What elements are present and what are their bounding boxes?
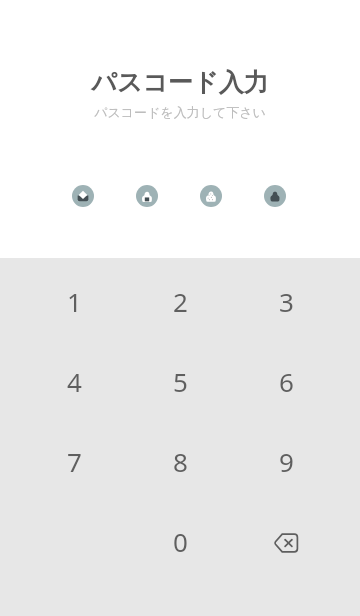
staticText: 8 (173, 444, 188, 479)
staticText: 9 (279, 444, 294, 479)
staticText: 0 (173, 524, 188, 559)
other: Passcode digit 3 (200, 185, 222, 207)
button[interactable]: 2 (127, 261, 233, 341)
other: Passcode digit 2 (136, 185, 158, 207)
staticText: 2 (173, 284, 188, 319)
button[interactable]: 0 (127, 501, 233, 581)
other: Passcode digit 1 (72, 185, 94, 207)
button[interactable]: 5 (127, 341, 233, 421)
button[interactable]: 4 (21, 341, 127, 421)
other: Passcode digit 4 (264, 185, 286, 207)
button[interactable]: 8 (127, 421, 233, 501)
button[interactable]: 3 (233, 261, 339, 341)
button[interactable]: 7 (21, 421, 127, 501)
staticText: 6 (279, 364, 294, 399)
staticText: パスコード入力 (91, 67, 269, 98)
button[interactable]: 6 (233, 341, 339, 421)
button[interactable]: 1 (21, 261, 127, 341)
button[interactable]: 9 (233, 421, 339, 501)
staticText: 4 (67, 364, 82, 399)
button[interactable]: Backspace (233, 501, 339, 581)
staticText: 3 (279, 284, 294, 319)
staticText: 5 (173, 364, 188, 399)
staticText: パスコードを入力して下さい (94, 104, 266, 120)
staticText: 7 (67, 444, 82, 479)
other: Backspace (273, 530, 299, 556)
staticText: 1 (67, 284, 82, 319)
